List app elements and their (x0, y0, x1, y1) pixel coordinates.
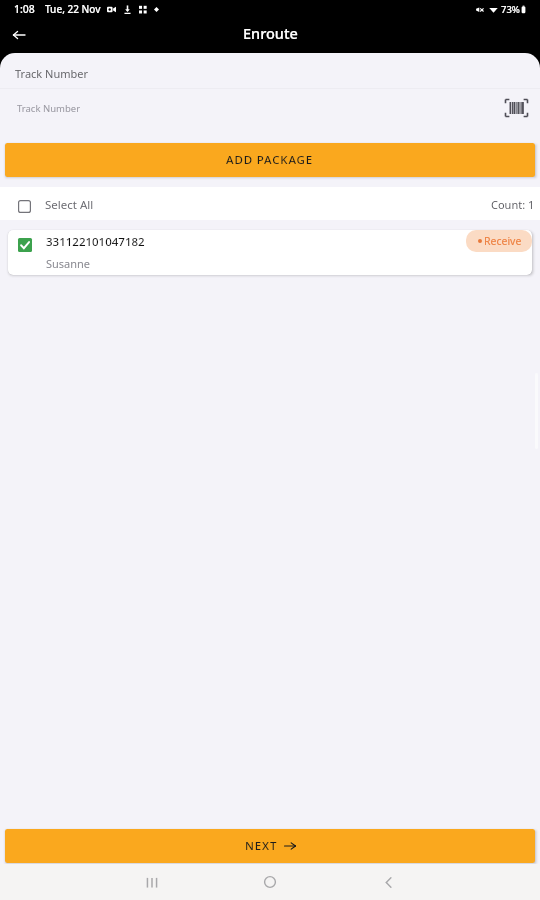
staticText: Susanne (46, 256, 91, 271)
button[interactable]: Select All (0, 187, 104, 220)
button[interactable]: NEXT (5, 829, 535, 863)
staticText: Count: 1 (491, 197, 535, 212)
staticText: Track Number (17, 102, 81, 115)
button[interactable]: Recents (134, 864, 170, 900)
button[interactable]: Home (252, 864, 288, 900)
button[interactable]: 331122101047182 (8, 230, 532, 275)
staticText: NEXT (245, 838, 278, 854)
staticText: 73% (501, 3, 520, 16)
button[interactable]: Track Number (0, 89, 540, 132)
staticText: Receive (484, 234, 522, 248)
button[interactable]: Back (7, 23, 31, 47)
staticText: 331122101047182 (46, 234, 145, 250)
staticText: ADD PACKAGE (226, 152, 314, 168)
staticText: Tue, 22 Nov (45, 2, 101, 16)
staticText: Enroute (243, 23, 298, 43)
staticText: Track Number (15, 66, 89, 81)
button[interactable]: Back (370, 864, 406, 900)
staticText: Select All (45, 197, 94, 213)
button[interactable]: Scan barcode (503, 95, 529, 121)
button[interactable]: ADD PACKAGE (5, 143, 535, 177)
staticText: 1:08 (14, 2, 35, 16)
